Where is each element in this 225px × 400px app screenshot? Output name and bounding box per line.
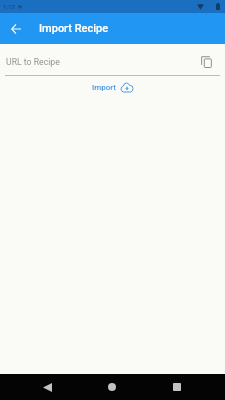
button[interactable]: Navigate up [5,18,27,40]
button[interactable]: Back [34,374,60,400]
button[interactable]: Recent apps [164,374,190,400]
staticText: URL to Recipe [6,57,60,67]
button[interactable]: Paste from clipboard [197,53,215,71]
staticText: Import [92,83,116,92]
button[interactable]: Import [89,82,136,93]
staticText: Import Recipe [39,22,109,35]
staticText: 1:17 [3,3,15,10]
button[interactable]: Home [99,374,125,400]
